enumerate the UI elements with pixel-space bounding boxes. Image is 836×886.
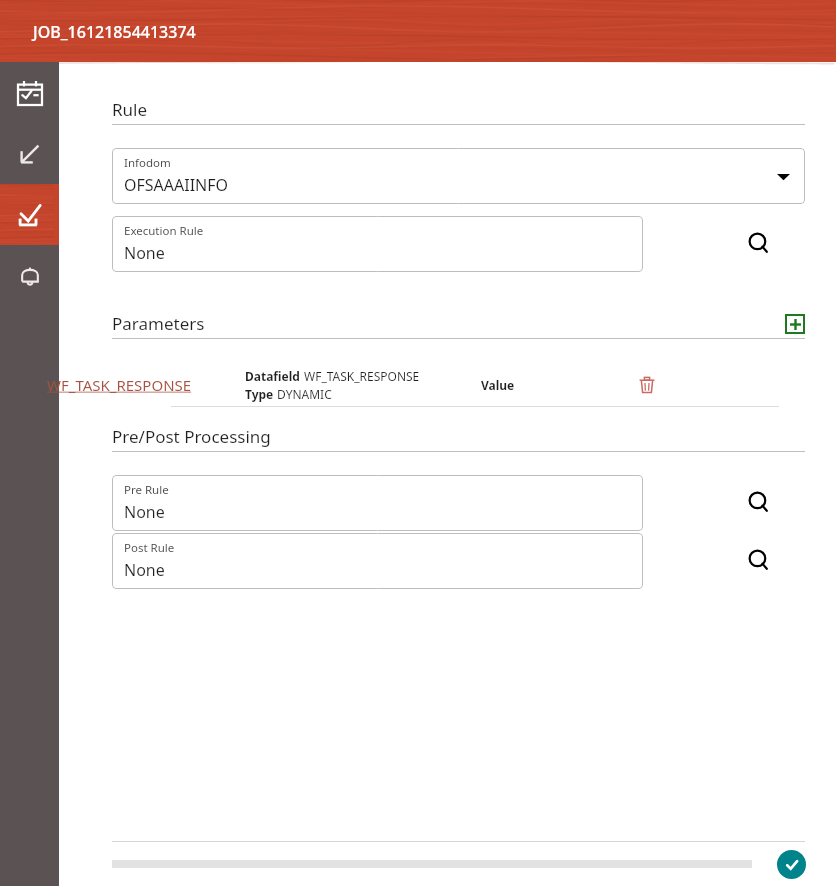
staticText: None [124, 559, 165, 581]
button[interactable]: WF_TASK_RESPONSE [59, 363, 245, 406]
staticText: Execution Rule [124, 223, 204, 239]
button[interactable]: Execution Rule [112, 216, 643, 272]
button[interactable]: Notifications [0, 245, 59, 306]
staticText: Rule [112, 98, 805, 121]
staticText: JOB_16121854413374 [33, 21, 196, 43]
staticText: DYNAMIC [277, 386, 332, 402]
staticText: Datafield [245, 368, 304, 384]
staticText: Pre/Post Processing [112, 425, 805, 448]
button[interactable]: Infodom [112, 148, 805, 204]
button[interactable]: Import [0, 123, 59, 184]
button[interactable]: Task Definition [0, 184, 59, 245]
staticText: OFSAAAIINFO [124, 174, 229, 196]
button[interactable]: Post Rule [112, 533, 643, 589]
button[interactable]: Save [777, 850, 806, 879]
staticText: Pre Rule [124, 482, 169, 498]
button[interactable]: Search Pre Rule [737, 481, 781, 525]
button[interactable]: Search Post Rule [737, 539, 781, 583]
staticText: Parameters [112, 312, 785, 335]
button[interactable]: Tasks [0, 62, 59, 123]
staticText: None [124, 242, 165, 264]
staticText: WF_TASK_RESPONSE [304, 368, 420, 384]
button[interactable]: Pre Rule [112, 475, 643, 531]
staticText: None [124, 501, 165, 523]
button[interactable]: Search Execution Rule [737, 222, 781, 266]
staticText: Type [245, 386, 277, 402]
staticText: Infodom [124, 155, 171, 171]
button[interactable]: Add parameter [785, 314, 805, 334]
staticText: WF_TASK_RESPONSE [47, 375, 192, 395]
staticText: Post Rule [124, 540, 175, 556]
staticText: Value [481, 377, 515, 393]
button[interactable]: Delete parameter [629, 367, 665, 403]
